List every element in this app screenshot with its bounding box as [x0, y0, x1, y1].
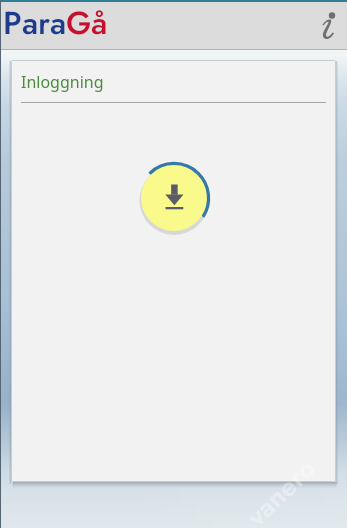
button[interactable]: Ladda ner [137, 161, 211, 235]
button[interactable]: Information [301, 3, 347, 49]
staticText: Inloggning [21, 71, 104, 93]
